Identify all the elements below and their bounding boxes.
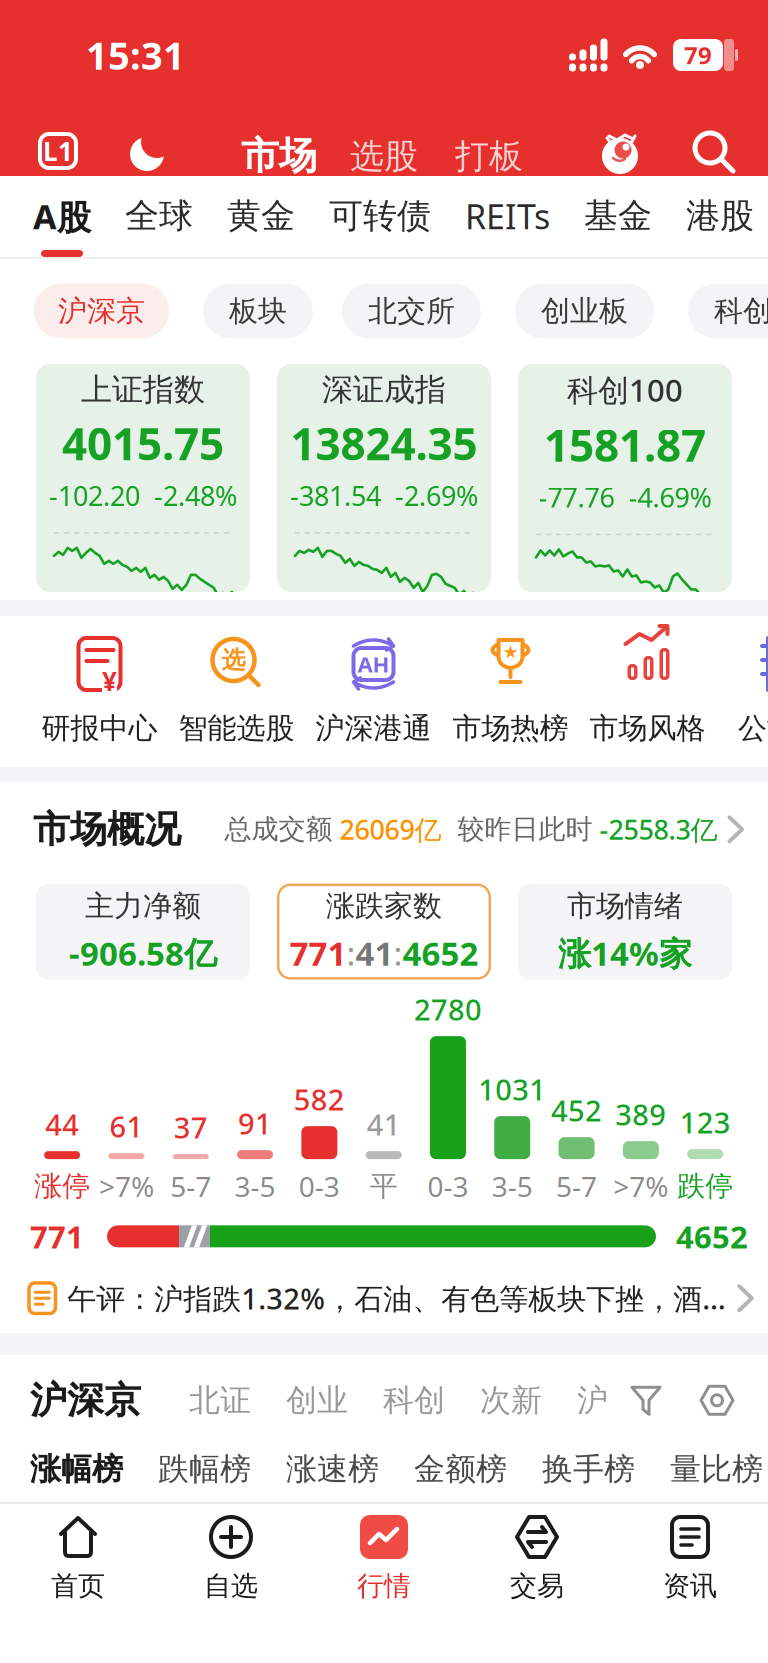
staticText: 涨14%家 — [558, 930, 692, 975]
staticText: 涨跌家数 — [326, 888, 442, 924]
button[interactable]: Night mode — [124, 129, 170, 175]
button[interactable]: 市场情绪 — [518, 884, 732, 980]
staticText: 沪深京 — [30, 1377, 141, 1424]
staticText: 4652 — [676, 1215, 748, 1257]
staticText: 总成交额 — [224, 812, 332, 846]
staticText: 换手榜 — [542, 1450, 635, 1489]
staticText: L1 — [43, 133, 73, 169]
button[interactable]: 换手榜 — [542, 1450, 635, 1489]
button[interactable]: 港股 — [686, 191, 754, 257]
button[interactable]: 沪深京 — [34, 283, 169, 338]
button[interactable]: AH — [305, 632, 442, 746]
button[interactable]: 资讯 — [613, 1514, 766, 1603]
button[interactable]: 基金 — [584, 191, 652, 257]
button[interactable]: 深证成指 — [277, 364, 491, 592]
staticText: 智能选股 — [178, 710, 294, 746]
staticText: 科创板 — [714, 293, 768, 329]
staticText: 北证 — [189, 1381, 251, 1420]
staticText: 涨速榜 — [286, 1450, 379, 1489]
button[interactable]: 创业板 — [515, 283, 654, 338]
staticText: 市场情绪 — [567, 888, 683, 924]
staticText: 3-5 — [234, 1167, 275, 1205]
staticText: 37 — [174, 1108, 208, 1147]
staticText: 5-7 — [170, 1167, 211, 1205]
staticText: 深证成指 — [322, 370, 446, 409]
staticText: 1031 — [478, 1070, 546, 1109]
staticText: 41 — [355, 930, 393, 975]
button[interactable]: 行情 — [307, 1514, 460, 1603]
button[interactable]: 次新 — [480, 1381, 542, 1420]
staticText: 771 — [289, 930, 346, 975]
button[interactable]: 交易 — [460, 1514, 613, 1603]
staticText: -102.20 — [49, 477, 140, 514]
button[interactable]: Search — [690, 128, 736, 174]
staticText: 452 — [551, 1091, 602, 1130]
button[interactable]: 涨速榜 — [286, 1450, 379, 1489]
staticText: 选 — [221, 645, 245, 675]
staticText: : — [346, 930, 355, 975]
button[interactable]: 公司研究 — [716, 632, 768, 746]
button[interactable]: 金额榜 — [414, 1450, 507, 1489]
button[interactable]: 选股 — [350, 135, 418, 178]
staticText: 79 — [684, 39, 712, 71]
staticText: 选股 — [350, 135, 418, 178]
button[interactable]: 自选 — [154, 1514, 307, 1603]
staticText: 4652 — [402, 930, 478, 975]
staticText: 市场风格 — [589, 710, 705, 746]
staticText: 389 — [615, 1095, 666, 1134]
button[interactable]: 跌幅榜 — [158, 1450, 251, 1489]
button[interactable]: 创业 — [286, 1381, 348, 1420]
button[interactable]: 科创 — [383, 1381, 445, 1420]
button[interactable]: 选 — [168, 632, 305, 746]
button[interactable]: 主力净额 — [36, 884, 250, 980]
button[interactable]: 市场 — [241, 132, 317, 180]
staticText: 主力净额 — [85, 888, 201, 924]
button[interactable]: 午评：沪指跌1.32%，石油、有色等板块下挫，酒… — [0, 1278, 768, 1318]
button[interactable]: 黄金 — [227, 191, 295, 257]
button[interactable]: 全球 — [125, 191, 193, 257]
staticText: 公司研究 — [738, 710, 768, 746]
button[interactable]: 科创100 — [518, 364, 732, 592]
staticText: 123 — [680, 1103, 731, 1142]
button[interactable]: REITs — [465, 191, 550, 257]
staticText: 1581.87 — [544, 415, 706, 475]
button[interactable]: 涨幅榜 — [30, 1450, 123, 1489]
button[interactable]: Level-1 quotes — [38, 132, 78, 170]
staticText: 北交所 — [368, 293, 455, 329]
button[interactable]: 北证 — [189, 1381, 251, 1420]
button[interactable]: 科创板 — [688, 283, 768, 338]
staticText: 黄金 — [227, 195, 295, 237]
button[interactable]: Filter — [630, 1384, 662, 1416]
staticText: 科创100 — [567, 368, 683, 411]
staticText: 2780 — [414, 990, 482, 1029]
button[interactable]: More market overview — [717, 814, 746, 844]
staticText: 板块 — [229, 293, 287, 329]
button[interactable]: ¥ — [31, 632, 168, 746]
button[interactable]: 首页 — [1, 1514, 154, 1603]
staticText: 0-3 — [427, 1167, 468, 1205]
staticText: AH — [357, 649, 389, 679]
button[interactable]: ★ — [442, 632, 579, 746]
staticText: ★ — [502, 641, 518, 662]
staticText: -2.48% — [154, 477, 237, 514]
staticText: 5-7 — [556, 1167, 597, 1205]
staticText: 自选 — [204, 1569, 258, 1603]
staticText: 科创 — [383, 1381, 445, 1420]
button[interactable]: 上证指数 — [36, 364, 250, 592]
button[interactable]: 量比榜 — [670, 1450, 763, 1489]
button[interactable]: 可转债 — [329, 191, 431, 257]
staticText: 沪深京 — [58, 293, 145, 329]
staticText: 4015.75 — [62, 413, 224, 473]
button[interactable]: Assistant — [595, 126, 645, 176]
staticText: 582 — [294, 1080, 345, 1119]
button[interactable]: 北交所 — [342, 283, 481, 338]
button[interactable]: 打板 — [455, 135, 523, 178]
button[interactable]: 市场风格 — [579, 632, 716, 746]
button[interactable]: 涨跌家数 — [277, 884, 491, 980]
button[interactable]: 板块 — [203, 283, 313, 338]
button[interactable]: Settings — [700, 1383, 734, 1417]
button[interactable]: 沪 — [577, 1381, 608, 1420]
button[interactable]: A股 — [33, 191, 91, 257]
staticText: 跌幅榜 — [158, 1450, 251, 1489]
staticText: 771 — [30, 1215, 84, 1257]
